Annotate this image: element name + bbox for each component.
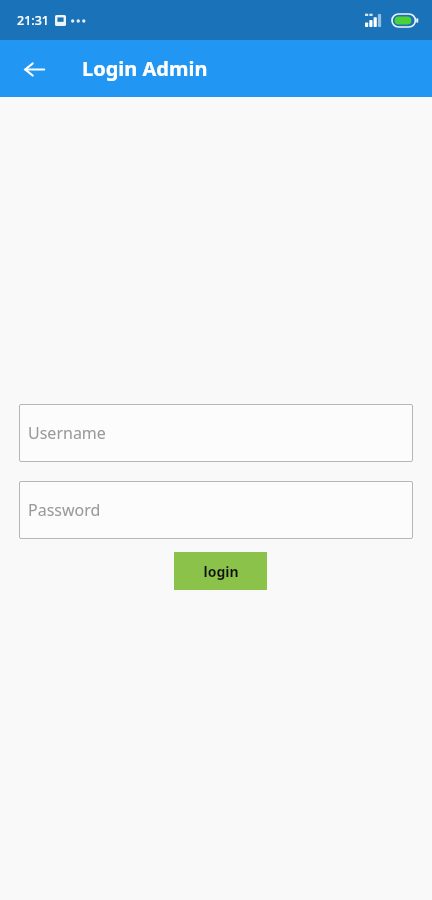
button[interactable]: Password (19, 481, 413, 539)
staticText: Password (28, 499, 101, 521)
staticText: login (203, 562, 239, 581)
button[interactable]: Username (19, 404, 413, 462)
button[interactable]: Back (12, 47, 56, 91)
staticText: Username (28, 422, 106, 444)
staticText: 21:31 (17, 12, 50, 29)
button[interactable]: login (174, 552, 267, 590)
staticText: Login Admin (82, 55, 208, 82)
